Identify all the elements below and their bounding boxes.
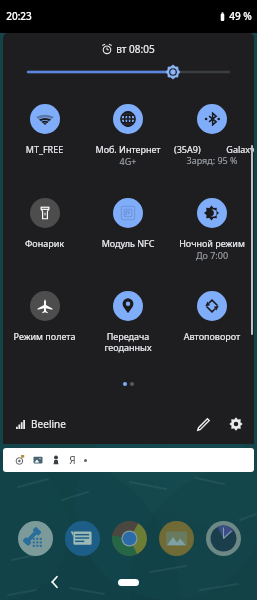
button[interactable]: Передача геоданных bbox=[86, 291, 170, 353]
button[interactable]: App 4 bbox=[206, 521, 241, 556]
button[interactable]: Моб. Интернет bbox=[86, 104, 170, 167]
button[interactable]: Edit tiles bbox=[190, 411, 216, 437]
button[interactable]: Режим полета bbox=[3, 291, 86, 342]
staticText: Beeline bbox=[31, 417, 66, 431]
button[interactable]: Автоповорот bbox=[170, 291, 254, 342]
button[interactable]: Ночной режим bbox=[170, 198, 254, 261]
staticText: (35A9) Galaxy bbox=[174, 143, 254, 154]
staticText: 49 % bbox=[229, 9, 252, 23]
button[interactable]: Back bbox=[44, 572, 64, 592]
staticText: Автоповорот bbox=[170, 330, 254, 342]
staticText: Я bbox=[69, 453, 76, 467]
staticText: Ночной режим bbox=[170, 237, 254, 249]
staticText: MT_FREE bbox=[3, 143, 86, 155]
staticText: Заряд: 95 % bbox=[170, 154, 254, 166]
staticText: 20:23 bbox=[6, 9, 32, 23]
staticText: До 7:00 bbox=[170, 249, 254, 261]
staticText: Фонарик bbox=[3, 237, 86, 249]
button[interactable] bbox=[3, 63, 254, 81]
button[interactable]: MT_FREE bbox=[3, 104, 86, 155]
button[interactable]: App 1 bbox=[65, 521, 100, 556]
button[interactable]: App 0 bbox=[18, 521, 53, 556]
button[interactable]: App 2 bbox=[112, 521, 147, 556]
button[interactable]: Фонарик bbox=[3, 198, 86, 249]
staticText: вт 08:05 bbox=[116, 42, 155, 56]
button[interactable]: Settings bbox=[223, 411, 249, 437]
staticText: Режим полета bbox=[3, 330, 86, 342]
staticText: 4G+ bbox=[86, 155, 170, 167]
staticText: Модуль NFC bbox=[86, 237, 170, 249]
button[interactable]: (35A9) Galaxy bbox=[170, 104, 254, 166]
staticText: Передача геоданных bbox=[86, 330, 170, 353]
button[interactable]: Я bbox=[3, 448, 254, 472]
button[interactable]: App 3 bbox=[159, 521, 194, 556]
staticText: Моб. Интернет bbox=[86, 143, 170, 155]
button[interactable]: Модуль NFC bbox=[86, 198, 170, 249]
button[interactable]: Home bbox=[118, 579, 139, 586]
